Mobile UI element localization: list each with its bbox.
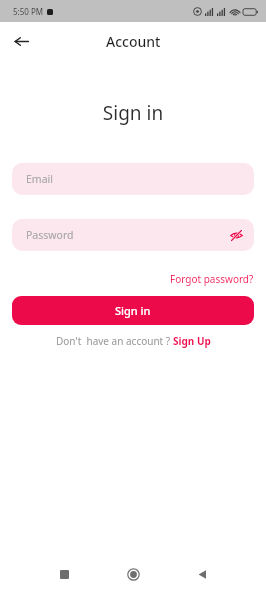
- button[interactable]: Recent apps: [52, 562, 76, 586]
- button[interactable]: Sign Up: [173, 334, 211, 348]
- button[interactable]: Email: [12, 163, 254, 195]
- staticText: Sign in: [115, 303, 151, 318]
- staticText: 5:50 PM: [13, 6, 44, 17]
- button[interactable]: Password: [12, 219, 254, 251]
- button[interactable]: Back: [8, 28, 34, 54]
- staticText: Sign in: [0, 100, 266, 126]
- button[interactable]: Sign in: [12, 296, 254, 325]
- staticText: Password: [26, 228, 74, 242]
- staticText: Don't have an account ?: [56, 334, 173, 348]
- button[interactable]: Home: [121, 562, 145, 586]
- staticText: Sign Up: [173, 334, 211, 348]
- button[interactable]: Forgot password?: [158, 270, 266, 288]
- button[interactable]: Back: [190, 562, 214, 586]
- staticText: Forgot password?: [170, 272, 254, 286]
- button[interactable]: Show password: [226, 225, 246, 245]
- staticText: Email: [26, 172, 53, 186]
- staticText: Account: [106, 32, 161, 51]
